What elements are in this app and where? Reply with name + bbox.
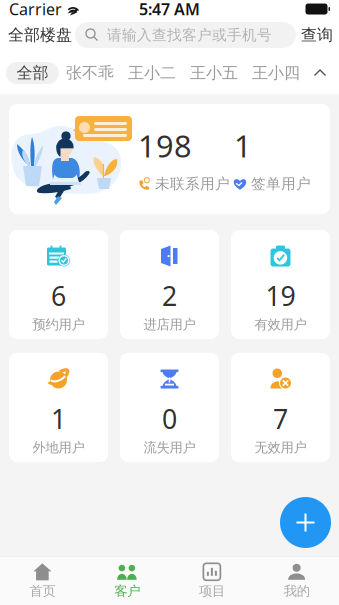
staticText: 请输入查找客户或手机号 [107,26,272,44]
staticText: 全部 [16,63,48,83]
staticText: 全部楼盘 [8,25,72,45]
staticText: 预约用户 [32,316,84,333]
staticText: 2 [162,278,177,313]
staticText: 外地用户 [32,439,84,456]
staticText: 项目 [199,583,225,599]
staticText: 无效用户 [254,439,306,456]
staticText: 1 [234,125,252,166]
button[interactable]: 首页 [0,556,85,605]
button[interactable]: 2 [120,230,219,339]
button[interactable]: 客户 [85,556,170,605]
button[interactable]: 王小四 [245,62,307,84]
staticText: 首页 [29,583,55,599]
button[interactable]: 全部楼盘 [8,19,72,51]
button[interactable]: 王小五 [183,62,245,84]
button[interactable]: 我的 [254,556,339,605]
button[interactable]: 项目 [169,556,254,605]
button[interactable]: 0 [120,353,219,462]
button[interactable]: 7 [231,353,330,462]
staticText: 7 [273,401,288,436]
button[interactable]: 张不乖 [59,62,121,84]
button[interactable]: 全部 [6,62,59,84]
staticText: 进店用户 [143,316,195,333]
staticText: 查询 [301,25,333,45]
button[interactable]: 添加 [280,497,331,548]
staticText: 王小五 [190,63,238,83]
staticText: 6 [51,278,66,313]
staticText: 有效用户 [254,316,306,333]
button[interactable]: 请输入查找客户或手机号 [75,22,296,48]
staticText: 签单用户 [251,175,311,193]
staticText: 流失用户 [143,439,195,456]
staticText: 19 [265,278,295,313]
button[interactable]: 收起 [307,60,333,86]
button[interactable]: 6 [9,230,108,339]
staticText: 1 [51,401,66,436]
button[interactable]: 查询 [301,19,333,51]
button[interactable]: 19 [231,230,330,339]
button[interactable]: 1 [9,353,108,462]
staticText: 客户 [114,583,140,599]
staticText: 未联系用户 [155,175,230,193]
staticText: 王小二 [128,63,176,83]
staticText: 张不乖 [66,63,114,83]
staticText: 王小四 [252,63,300,83]
button[interactable]: 王小二 [121,62,183,84]
staticText: 5:47 AM [139,0,200,20]
staticText: 198 [138,125,192,166]
staticText: 我的 [284,583,310,599]
staticText: 0 [162,401,177,436]
staticText: Carrier [9,0,62,20]
